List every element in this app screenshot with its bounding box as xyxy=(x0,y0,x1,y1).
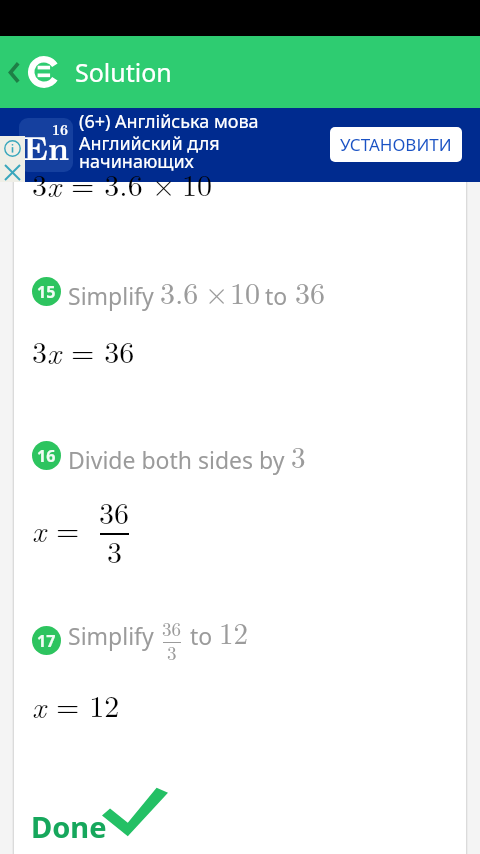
staticText: 15 xyxy=(37,281,56,303)
staticText: 3.6 xyxy=(160,270,199,313)
staticText: УСТАНОВИТИ xyxy=(340,133,452,156)
staticText: 10 xyxy=(182,162,212,205)
staticText: x xyxy=(47,163,61,205)
staticText: to xyxy=(184,620,219,651)
staticText: начинающих xyxy=(79,149,194,174)
staticText: Done xyxy=(31,807,107,846)
staticText: Simplify xyxy=(68,620,160,651)
button[interactable]: 17 xyxy=(32,626,61,655)
button[interactable]: Close ad xyxy=(0,160,25,184)
button[interactable]: УСТАНОВИТИ xyxy=(330,127,462,162)
staticText: 3 xyxy=(291,435,306,476)
button[interactable]: Ad info xyxy=(0,136,25,160)
staticText: x xyxy=(32,684,46,726)
staticText: x xyxy=(32,508,46,550)
staticText: 3 xyxy=(32,329,47,372)
staticText: 3 xyxy=(107,529,122,572)
staticText: 16 xyxy=(52,119,69,139)
staticText: 12 xyxy=(219,611,249,652)
staticText: (6+) Англійська мова xyxy=(79,109,259,134)
staticText: Simplify xyxy=(68,280,160,311)
staticText: 36 xyxy=(295,270,325,313)
staticText: En xyxy=(23,123,70,170)
staticText: × xyxy=(152,162,176,205)
staticText: 36 xyxy=(99,490,129,533)
staticText: 36 xyxy=(162,615,182,642)
button[interactable]: 16 xyxy=(32,441,61,470)
staticText: × xyxy=(205,270,229,313)
staticText: Solution xyxy=(75,55,172,89)
staticText: Divide both sides by xyxy=(68,444,291,475)
button[interactable]: Back xyxy=(0,36,28,108)
staticText: to xyxy=(265,280,288,311)
button[interactable]: 15 xyxy=(32,277,61,306)
staticText: 3 xyxy=(32,162,47,205)
staticText: x xyxy=(47,330,61,372)
staticText: Английский для xyxy=(79,131,220,156)
staticText: = xyxy=(46,507,90,550)
staticText: 10 xyxy=(230,270,260,313)
staticText: 17 xyxy=(37,630,56,652)
staticText: = 12 xyxy=(46,683,120,726)
staticText: 3 xyxy=(167,639,177,666)
staticText: = 36 xyxy=(61,329,135,372)
staticText: 16 xyxy=(37,445,56,467)
staticText: = 3.6 xyxy=(61,162,143,205)
